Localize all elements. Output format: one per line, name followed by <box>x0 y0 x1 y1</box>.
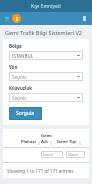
staticText: Yön <box>9 64 18 70</box>
staticText: Bölge <box>9 43 22 49</box>
button[interactable]: Account <box>80 14 89 23</box>
button[interactable]: Gemi Tipi <box>66 151 85 158</box>
staticText: Showing 1 to 171 of 171 entries <box>7 168 74 174</box>
staticText: i <box>16 15 18 23</box>
staticText: Gemi <box>43 152 53 157</box>
button[interactable]: İSTANBUL <box>9 51 83 60</box>
staticText: Kıyı Emniyeti <box>31 3 61 10</box>
staticText: Adı <box>41 139 48 145</box>
staticText: Sorgula <box>16 110 35 117</box>
staticText: Seçiniz <box>12 95 77 101</box>
staticText: Plakası <box>21 139 36 145</box>
staticText: Gemi Tipi <box>57 139 77 145</box>
button[interactable]: Info <box>12 14 21 23</box>
button[interactable]: Sorgula <box>9 107 42 120</box>
staticText: Gemi Trafik Bilgi Sistemleri V2 <box>5 29 82 36</box>
staticText: Seçiniz <box>12 74 77 80</box>
staticText: İSTANBUL <box>12 53 77 59</box>
staticText: Gemi Tipi <box>68 152 83 157</box>
button[interactable]: Seçiniz <box>9 93 83 102</box>
staticText: Kılavuzluk <box>9 85 33 91</box>
staticText: Gemi <box>41 133 52 139</box>
button[interactable]: Seçiniz <box>9 72 83 81</box>
button[interactable]: Menu <box>2 14 11 23</box>
button[interactable]: Gemi <box>41 151 63 158</box>
